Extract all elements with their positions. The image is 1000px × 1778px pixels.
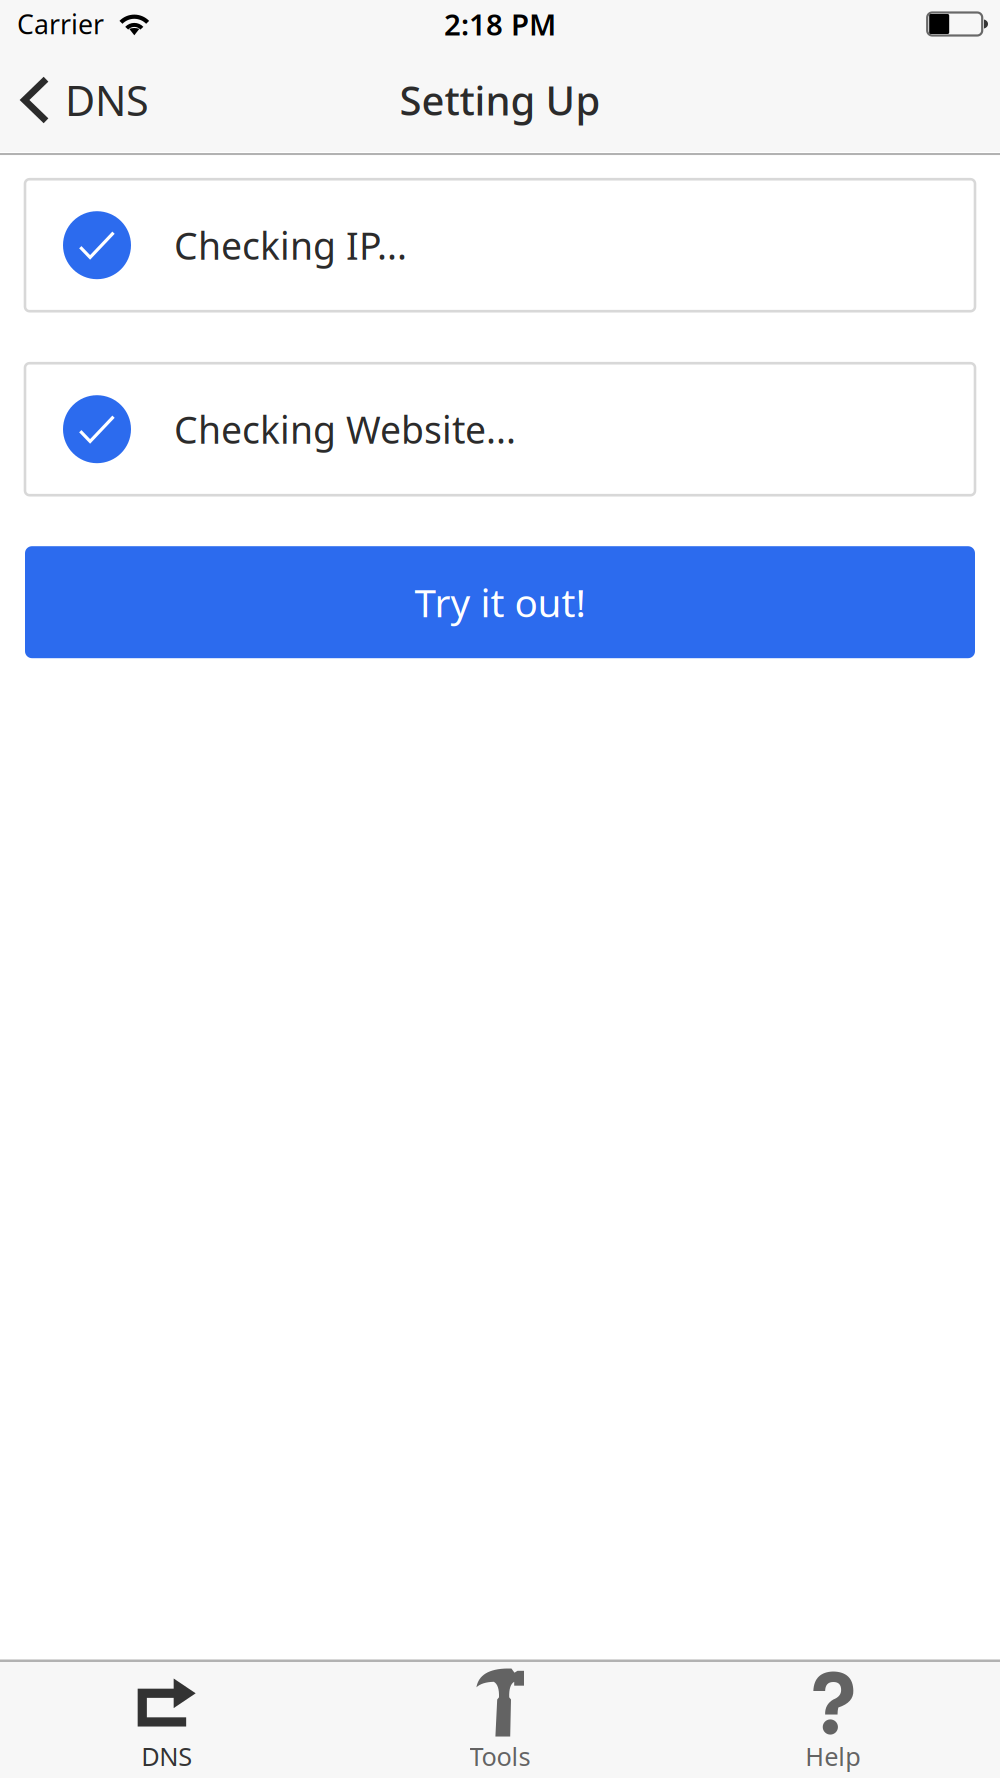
button[interactable]: DNS <box>0 61 149 139</box>
button[interactable]: Help <box>667 1662 1000 1778</box>
staticText: 2:18 PM <box>444 4 556 43</box>
staticText: Help <box>805 1739 861 1773</box>
staticText: DNS <box>65 73 149 127</box>
staticText: Carrier <box>17 6 104 42</box>
staticText: DNS <box>141 1739 192 1773</box>
button[interactable]: DNS <box>0 1662 333 1778</box>
button[interactable]: Try it out! <box>25 546 975 658</box>
staticText: Checking Website... <box>174 404 516 454</box>
staticText: Tools <box>469 1739 530 1773</box>
button[interactable]: Tools <box>333 1662 667 1778</box>
staticText: Try it out! <box>414 576 585 628</box>
staticText: Setting Up <box>399 73 600 126</box>
staticText: Checking IP... <box>174 220 407 270</box>
